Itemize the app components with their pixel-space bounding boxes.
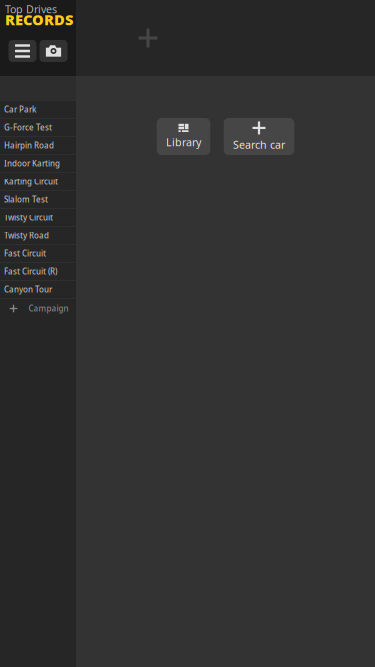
staticText: Twisty Circuit bbox=[4, 212, 53, 223]
button[interactable]: G-Force Test bbox=[0, 118, 76, 136]
button[interactable]: Fast Circuit bbox=[0, 244, 76, 262]
staticText: Twisty Road bbox=[4, 230, 49, 241]
staticText: G-Force Test bbox=[4, 122, 52, 133]
staticText: Car Park bbox=[4, 104, 36, 115]
staticText: Hairpin Road bbox=[4, 140, 54, 151]
staticText: Canyon Tour bbox=[4, 284, 52, 295]
button[interactable]: Slalom Test bbox=[0, 190, 76, 208]
staticText: Indoor Karting bbox=[4, 158, 60, 169]
button[interactable]: Fast Circuit (R) bbox=[0, 262, 76, 280]
staticText: Karting Circuit bbox=[4, 176, 58, 187]
button[interactable]: Twisty Circuit bbox=[0, 208, 76, 226]
button[interactable]: Hairpin Road bbox=[0, 136, 76, 154]
button[interactable]: Camera bbox=[39, 40, 67, 62]
button[interactable]: Canyon Tour bbox=[0, 280, 76, 298]
staticText: Top Drives bbox=[5, 2, 57, 16]
button[interactable]: Campaign bbox=[0, 298, 76, 318]
button[interactable]: Twisty Road bbox=[0, 226, 76, 244]
staticText: Slalom Test bbox=[4, 194, 48, 205]
button[interactable]: Menu bbox=[8, 40, 36, 62]
button[interactable]: Add bbox=[129, 19, 167, 57]
staticText: Fast Circuit bbox=[4, 248, 46, 259]
staticText: Fast Circuit (R) bbox=[4, 266, 57, 277]
staticText: Campaign bbox=[28, 303, 68, 314]
staticText: RECORDS bbox=[5, 10, 73, 29]
button[interactable]: Search car bbox=[224, 118, 294, 155]
staticText: Search car bbox=[233, 137, 285, 152]
button[interactable]: Karting Circuit bbox=[0, 172, 76, 190]
button[interactable]: Indoor Karting bbox=[0, 154, 76, 172]
staticText: Library bbox=[166, 135, 201, 149]
button[interactable]: Car Park bbox=[0, 100, 76, 118]
button[interactable]: Library bbox=[157, 118, 210, 155]
